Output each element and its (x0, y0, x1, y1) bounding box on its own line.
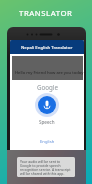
button[interactable]: English (40, 139, 55, 145)
staticText: Google (37, 83, 58, 91)
staticText: Hello my Friend how are you today (15, 70, 84, 76)
button[interactable]: Nepali English Translator (10, 40, 84, 54)
button[interactable]: Speak (35, 93, 59, 117)
staticText: Speech (39, 119, 55, 125)
staticText: Your audio will be sent to Google to pro… (20, 159, 72, 176)
staticText: Nepali English Translator (21, 44, 73, 50)
button[interactable]: Hello my Friend how are you today (12, 56, 83, 80)
staticText: TRANSLATOR (19, 8, 73, 19)
button[interactable]: Your audio will be sent to Google to pro… (17, 157, 75, 177)
